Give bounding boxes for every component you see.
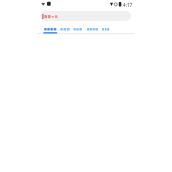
button[interactable]	[72, 25, 83, 34]
button[interactable]	[85, 25, 99, 34]
button[interactable]	[42, 25, 58, 34]
button[interactable]	[100, 25, 111, 34]
button[interactable]	[40, 11, 131, 21]
button[interactable]	[59, 25, 71, 34]
staticText: 4:17	[123, 2, 133, 8]
